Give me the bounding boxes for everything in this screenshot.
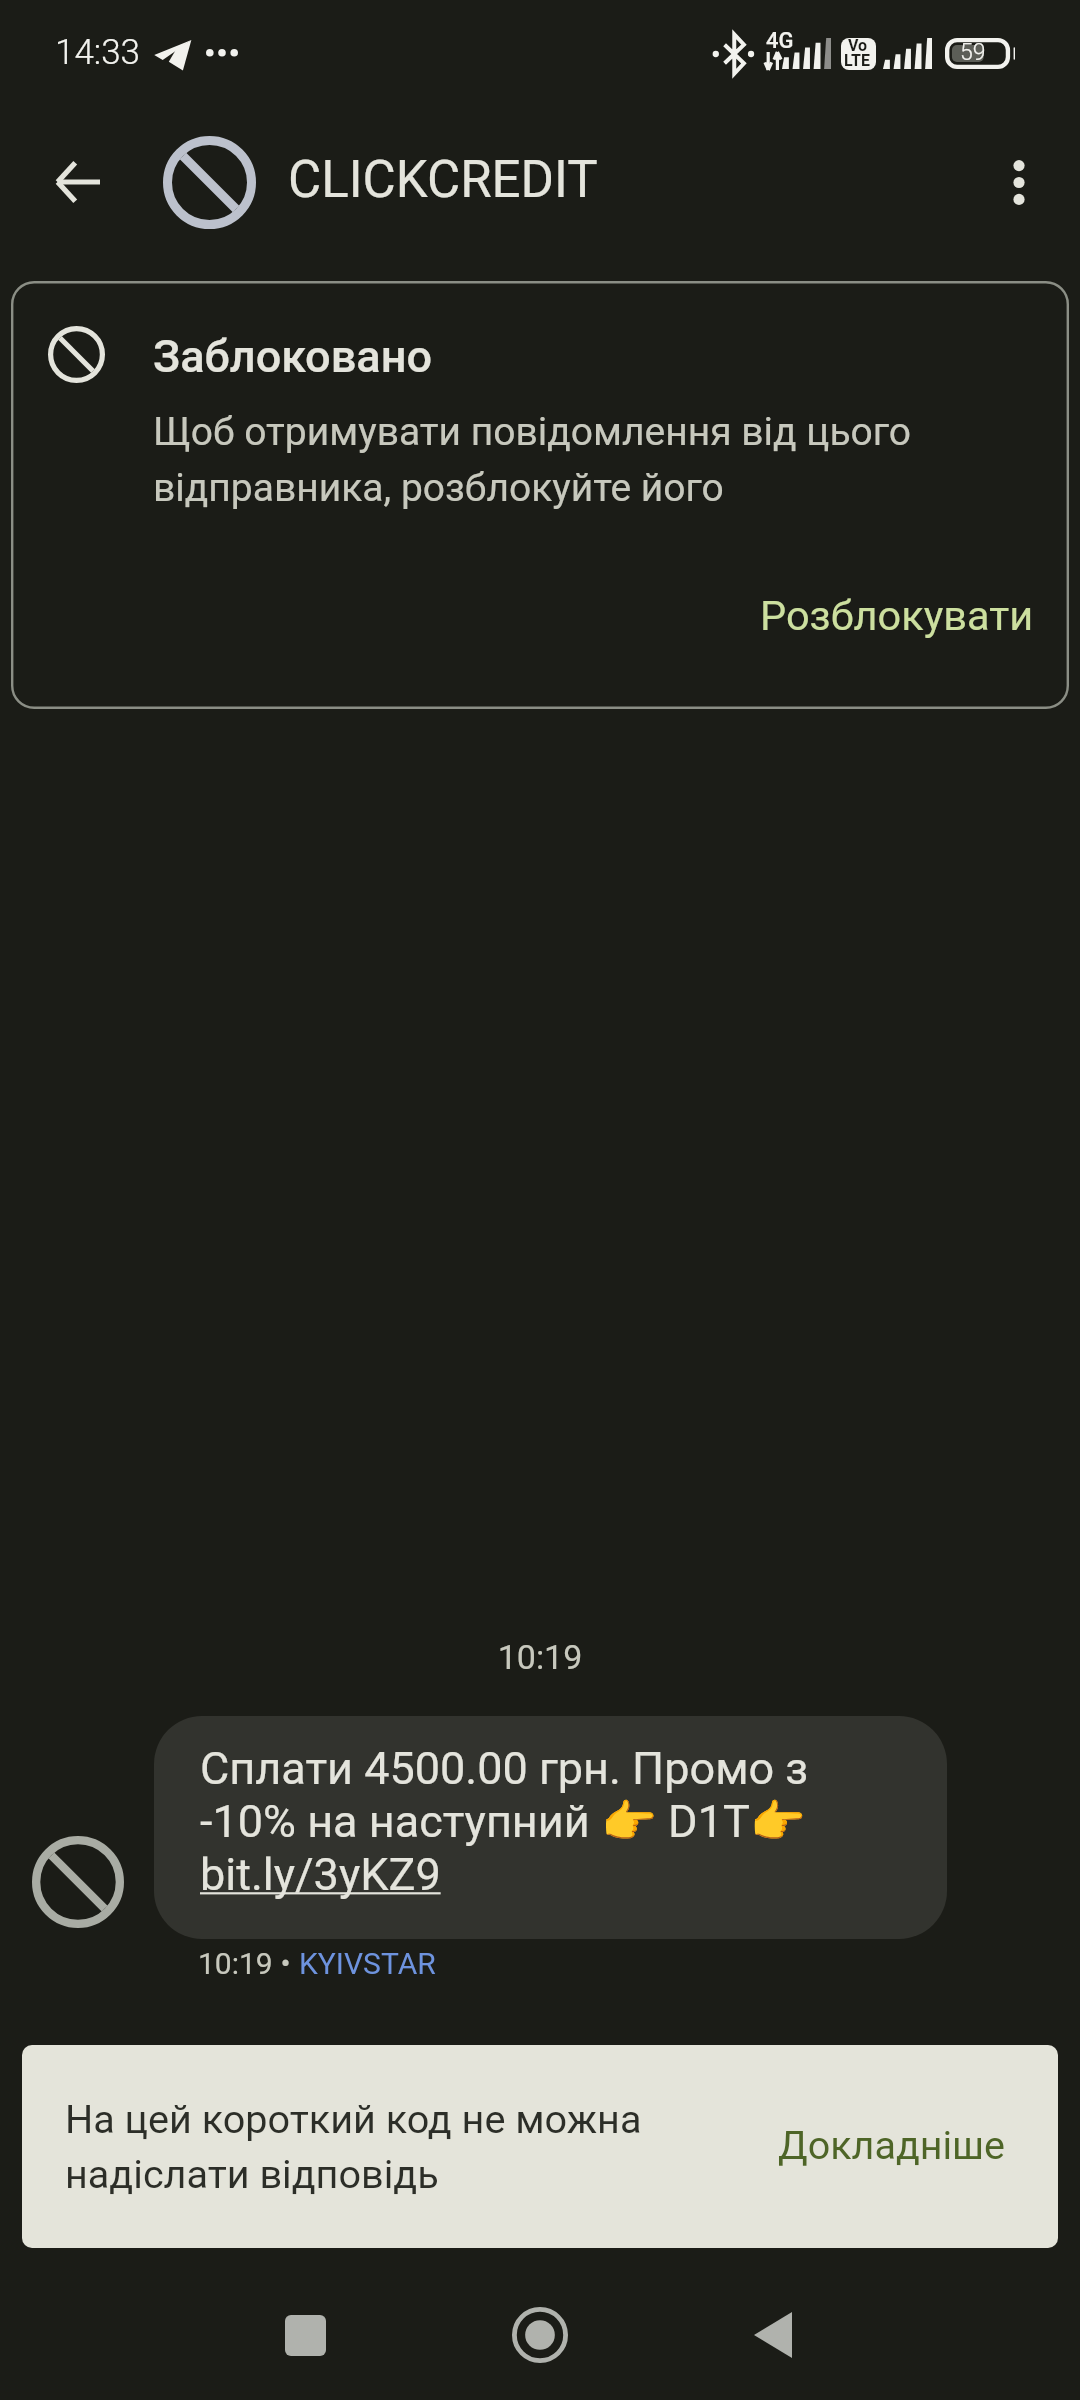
button[interactable]: Back [706, 2270, 840, 2400]
staticText: Докладніше [778, 2122, 1006, 2168]
staticText: На цей короткий код не можна надіслати в… [65, 2096, 725, 2198]
button[interactable]: Сплати 4500.00 грн. Промо з [154, 1716, 947, 1939]
staticText: 4G [766, 28, 794, 54]
button[interactable]: Докладніше [750, 2106, 1034, 2184]
staticText: bit.ly/3yKZ9 [200, 1848, 441, 1901]
staticText: • [273, 1946, 299, 1981]
staticText: -10% на наступний 👉 D1T👉 [200, 1795, 806, 1848]
staticText: 10:19 [198, 1946, 273, 1981]
staticText: KYIVSTAR [299, 1946, 436, 1981]
staticText: 14:33 [55, 32, 141, 73]
staticText: 59 [960, 39, 986, 66]
button[interactable]: Розблокувати [732, 573, 1062, 658]
button[interactable]: Recents [238, 2270, 372, 2400]
button[interactable]: Home [473, 2270, 607, 2400]
button[interactable]: Back [37, 142, 117, 222]
staticText: Розблокувати [760, 591, 1034, 640]
staticText: Заблоковано [153, 330, 433, 383]
staticText: Щоб отримувати повідомлення від цього ві… [153, 409, 943, 511]
staticText: LTE [844, 51, 870, 70]
button[interactable]: More options [974, 137, 1064, 227]
staticText: Vo [848, 38, 868, 55]
staticText: Сплати 4500.00 грн. Промо з [200, 1742, 809, 1795]
staticText: 10:19 [0, 1637, 1080, 1677]
staticText: CLICKCREDIT [288, 150, 598, 210]
